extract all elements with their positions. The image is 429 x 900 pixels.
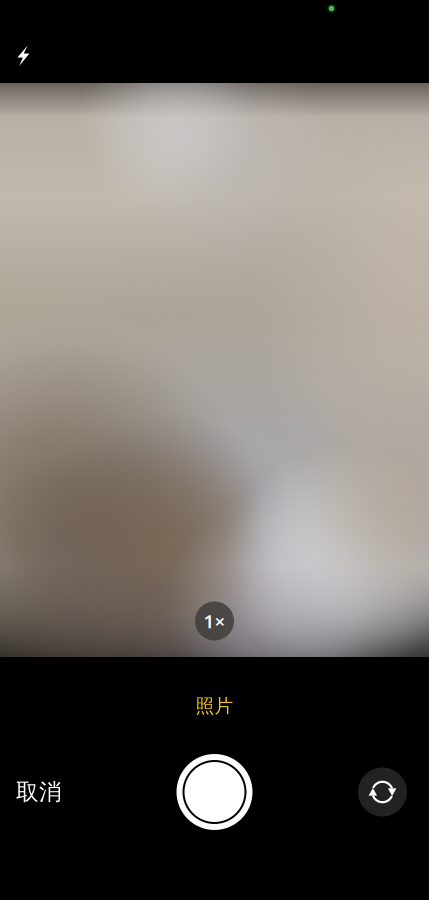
- button[interactable]: Zoom, 1x: [192, 599, 236, 643]
- button[interactable]: Switch camera: [358, 767, 407, 816]
- staticText: 取消: [16, 778, 62, 806]
- button[interactable]: Flash: [0, 33, 46, 79]
- button[interactable]: Take photo: [172, 750, 256, 834]
- button[interactable]: 取消: [16, 768, 90, 816]
- button[interactable]: 照片: [171, 692, 257, 720]
- staticText: 照片: [195, 694, 233, 717]
- staticText: 1×: [203, 609, 225, 633]
